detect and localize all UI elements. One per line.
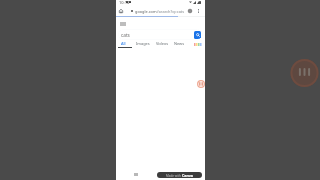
staticText: Canva xyxy=(182,173,194,178)
button[interactable]: cats xyxy=(118,29,203,40)
staticText: Made with xyxy=(166,174,182,178)
button[interactable]: All xyxy=(121,41,126,48)
staticText: Images xyxy=(136,41,150,46)
button[interactable]: More xyxy=(194,41,203,47)
button[interactable]: More options xyxy=(196,8,201,13)
button[interactable]: Made with xyxy=(157,172,202,178)
staticText: 10:14 xyxy=(119,0,130,5)
button[interactable]: Videos xyxy=(156,41,169,48)
button[interactable]: Images xyxy=(136,41,150,48)
staticText: Videos xyxy=(156,41,169,46)
button[interactable]: Search xyxy=(194,31,201,39)
staticText: News xyxy=(174,41,184,46)
staticText: google.com xyxy=(135,9,157,14)
button[interactable]: News xyxy=(174,41,184,48)
staticText: cats xyxy=(121,32,130,38)
button[interactable]: Home xyxy=(118,8,124,14)
staticText: All xyxy=(121,41,126,46)
staticText: /search?q=cats xyxy=(157,9,185,14)
button[interactable]: Tabs xyxy=(187,8,193,14)
